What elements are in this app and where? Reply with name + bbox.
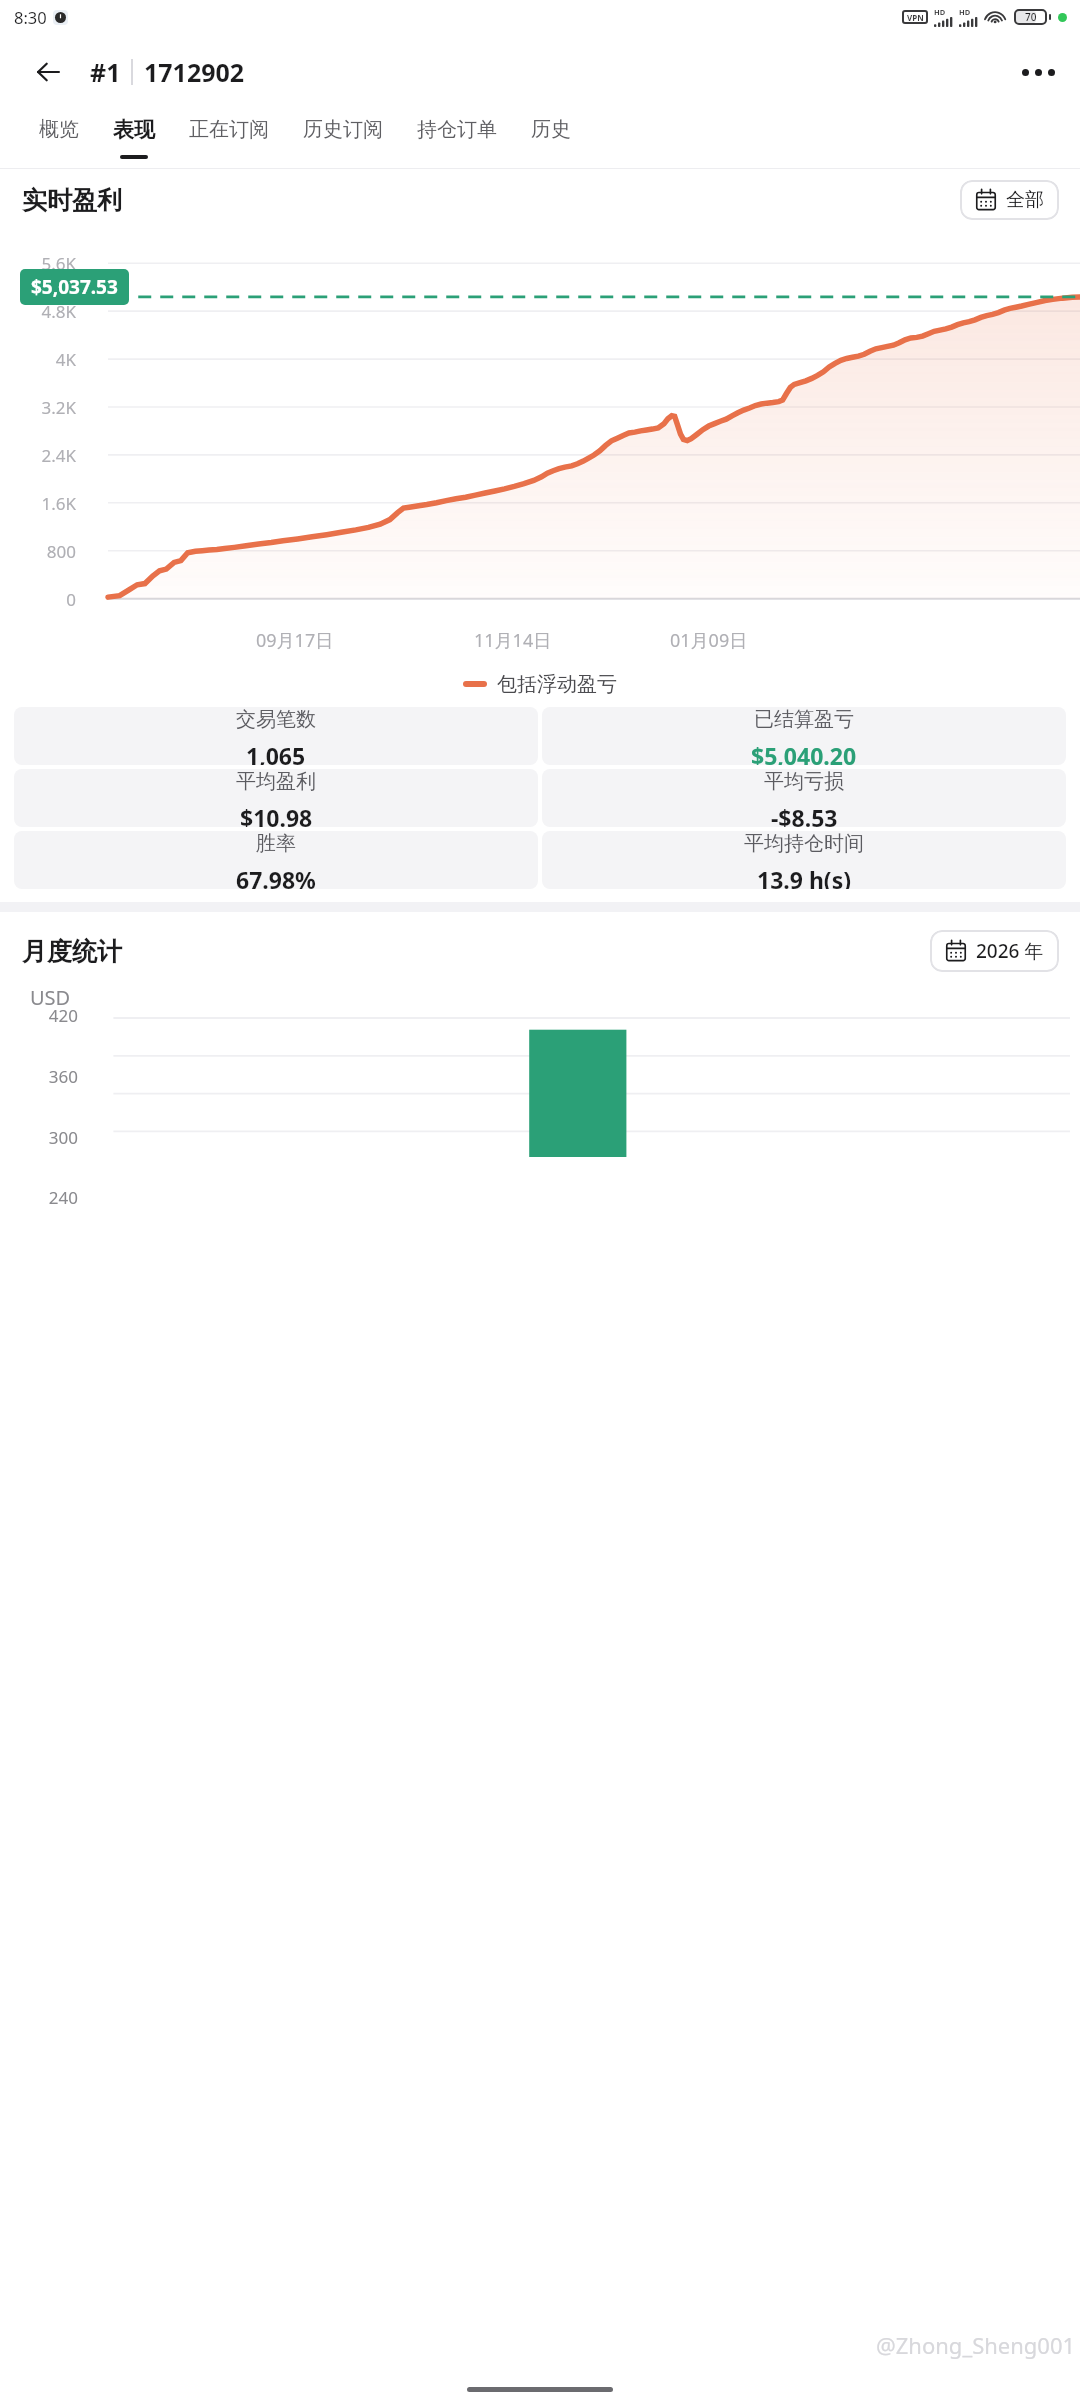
staticText: $5,037.53 [31,274,118,300]
staticText: 实时盈利 [22,185,122,216]
staticText: 4K [0,348,76,371]
button[interactable]: 平均持仓时间 [542,831,1066,889]
staticText: 67.98% [236,864,316,889]
staticText: 历史订阅 [303,117,383,142]
staticText: 1,065 [246,740,306,765]
staticText: 全部 [1006,188,1044,212]
staticText: $10.98 [240,802,313,827]
staticText: 0 [0,588,76,611]
staticText: @Zhong_Sheng001 [876,2330,1076,2360]
staticText: 历史 [531,117,571,142]
staticText: 70 [1025,10,1037,24]
button[interactable]: 平均亏损 [542,769,1066,827]
staticText: 平均持仓时间 [744,831,864,856]
staticText: 持仓订单 [417,117,497,142]
button[interactable]: 历史订阅 [286,111,400,154]
staticText: 5.6K [0,252,76,275]
button[interactable]: 表现 [96,111,172,159]
button[interactable]: 平均盈利 [14,769,538,827]
button[interactable]: 正在订阅 [172,111,286,154]
staticText: 已结算盈亏 [754,707,854,732]
staticText: 包括浮动盈亏 [497,672,617,697]
staticText: 2026 年 [976,938,1044,964]
staticText: VPN [907,12,924,23]
staticText: 240 [0,1186,78,1209]
staticText: HD [934,7,946,17]
staticText: 300 [0,1126,78,1149]
staticText: 交易笔数 [236,707,316,732]
staticText: #1 [90,55,121,89]
staticText: 01月09日 [670,628,748,653]
staticText: 800 [0,540,76,563]
staticText: 表现 [113,117,155,143]
staticText: 09月17日 [256,628,334,653]
staticText: 4.8K [0,300,76,323]
staticText: 1712902 [144,55,245,89]
staticText: 平均亏损 [764,769,844,794]
button[interactable]: 2026 年 [930,930,1059,972]
staticText: 420 [0,1004,78,1027]
button[interactable]: 交易笔数 [14,707,538,765]
button[interactable]: 概览 [22,111,96,154]
button[interactable]: More options [1010,44,1066,100]
button[interactable]: 胜率 [14,831,538,889]
staticText: 月度统计 [22,936,122,967]
staticText: 平均盈利 [236,769,316,794]
staticText: 3.2K [0,396,76,419]
staticText: USD [30,984,71,1011]
staticText: 13.9 h(s) [757,864,852,889]
staticText: 1.6K [0,492,76,515]
button[interactable]: 全部 [960,180,1059,220]
button[interactable]: 已结算盈亏 [542,707,1066,765]
staticText: 胜率 [256,831,296,856]
staticText: 360 [0,1065,78,1088]
staticText: -$8.53 [771,802,838,827]
staticText: HD [959,7,971,17]
staticText: 2.4K [0,444,76,467]
staticText: 8:30 [14,6,47,28]
staticText: 概览 [39,117,79,142]
button[interactable]: Back [22,46,74,98]
staticText: 正在订阅 [189,117,269,142]
button[interactable]: 持仓订单 [400,111,514,154]
button[interactable]: 历史 [514,111,588,154]
staticText: 11月14日 [474,628,552,653]
staticText: $5,040.20 [751,740,857,765]
